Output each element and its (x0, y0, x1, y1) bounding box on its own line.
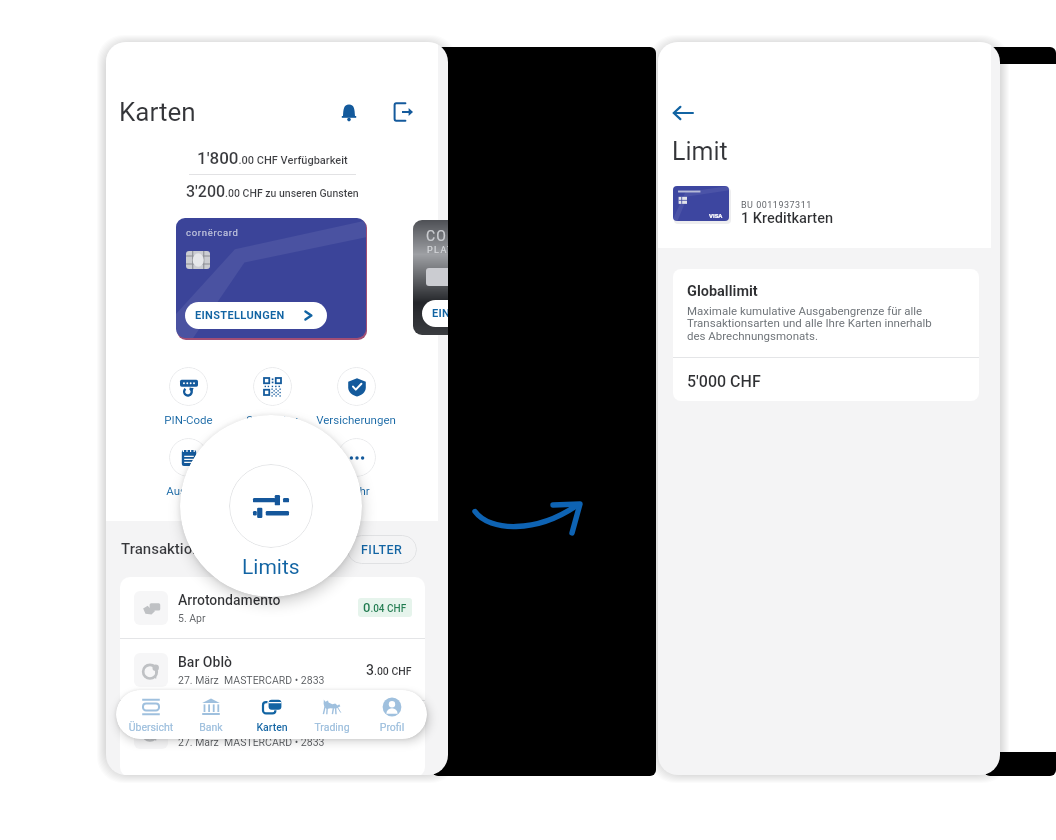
staticText: 3.00 CHF (366, 662, 412, 678)
button[interactable]: Übersicht (122, 692, 180, 737)
staticText: Globallimit (687, 283, 758, 300)
button[interactable]: PIN-Code (146, 367, 230, 427)
button[interactable]: Bank (182, 692, 240, 737)
button[interactable]: Mehr (314, 438, 398, 498)
staticText: Profil (363, 721, 421, 733)
staticText: 27. März MASTERCARD • 2833 (178, 674, 325, 686)
button[interactable]: Limits (180, 415, 362, 597)
button[interactable]: Karten (243, 692, 301, 737)
staticText: Versicherungen (316, 413, 396, 426)
button[interactable]: Trading (303, 692, 361, 737)
staticText: EINSTELLUNGEN (432, 307, 448, 320)
staticText: 1 Kreditkarten (741, 210, 834, 227)
staticText: 1'800.00 CHF Verfügbarkeit (197, 148, 348, 168)
button[interactable]: Arrotondamento (134, 577, 412, 638)
staticText: Bank (182, 721, 240, 733)
staticText: Bar Oblò (178, 654, 232, 670)
staticText: FILTER (361, 542, 403, 557)
staticText: 5'000 CHF (687, 372, 761, 391)
staticText: Limit (672, 137, 728, 166)
staticText: 3'200.00 CHF zu unseren Gunsten (186, 182, 359, 201)
staticText: 27. März MASTERCARD • 2833 (178, 736, 325, 748)
staticText: Bar Oblò (178, 716, 232, 732)
button[interactable]: Auszüge (146, 438, 230, 498)
button[interactable]: EINSTELLUNGEN (185, 302, 327, 329)
staticText: Limits (242, 555, 300, 580)
button[interactable]: Back (668, 98, 698, 128)
button[interactable]: Versicherungen (314, 367, 398, 427)
button[interactable]: Bar Oblò (134, 639, 412, 700)
staticText: VISA (709, 212, 723, 219)
staticText: PIN-Code (164, 413, 213, 426)
button[interactable]: Profil (363, 692, 421, 737)
button[interactable]: FILTER (347, 535, 417, 564)
staticText: Übersicht (122, 721, 180, 733)
staticText: EINSTELLUNGEN (195, 309, 285, 322)
staticText: Transaktionen (121, 540, 217, 558)
staticText: Arrotondamento (178, 592, 281, 608)
button[interactable]: Limits (230, 438, 314, 498)
staticText: Scan&Pay (246, 413, 298, 426)
staticText: Karten (243, 721, 301, 733)
button[interactable]: CORNÈRCARD (413, 220, 448, 335)
button[interactable]: EINSTELLUNGEN (422, 300, 448, 327)
staticText: 3.00 CHF (366, 724, 412, 740)
staticText: Trading (303, 721, 361, 733)
staticText: Limits (256, 484, 288, 497)
staticText: PLATINUM (427, 245, 448, 256)
button[interactable]: Bar Oblò (134, 701, 412, 762)
staticText: Maximale kumulative Ausgabengrenze für a… (687, 304, 950, 343)
button[interactable]: Logout (386, 95, 420, 129)
staticText: Mehr (343, 484, 370, 497)
staticText: 0.04 CHF (363, 600, 407, 615)
staticText: 5. Apr (178, 612, 206, 624)
staticText: cornёrcard (186, 227, 239, 238)
staticText: Karten (119, 97, 196, 127)
staticText: BU 0011937311 (741, 200, 812, 211)
button[interactable]: Notifications (332, 95, 366, 129)
button[interactable]: cornёrcard (176, 218, 366, 338)
button[interactable]: Scan&Pay (230, 367, 314, 427)
staticText: Auszüge (166, 484, 211, 497)
staticText: CORNÈRCARD (426, 228, 448, 244)
